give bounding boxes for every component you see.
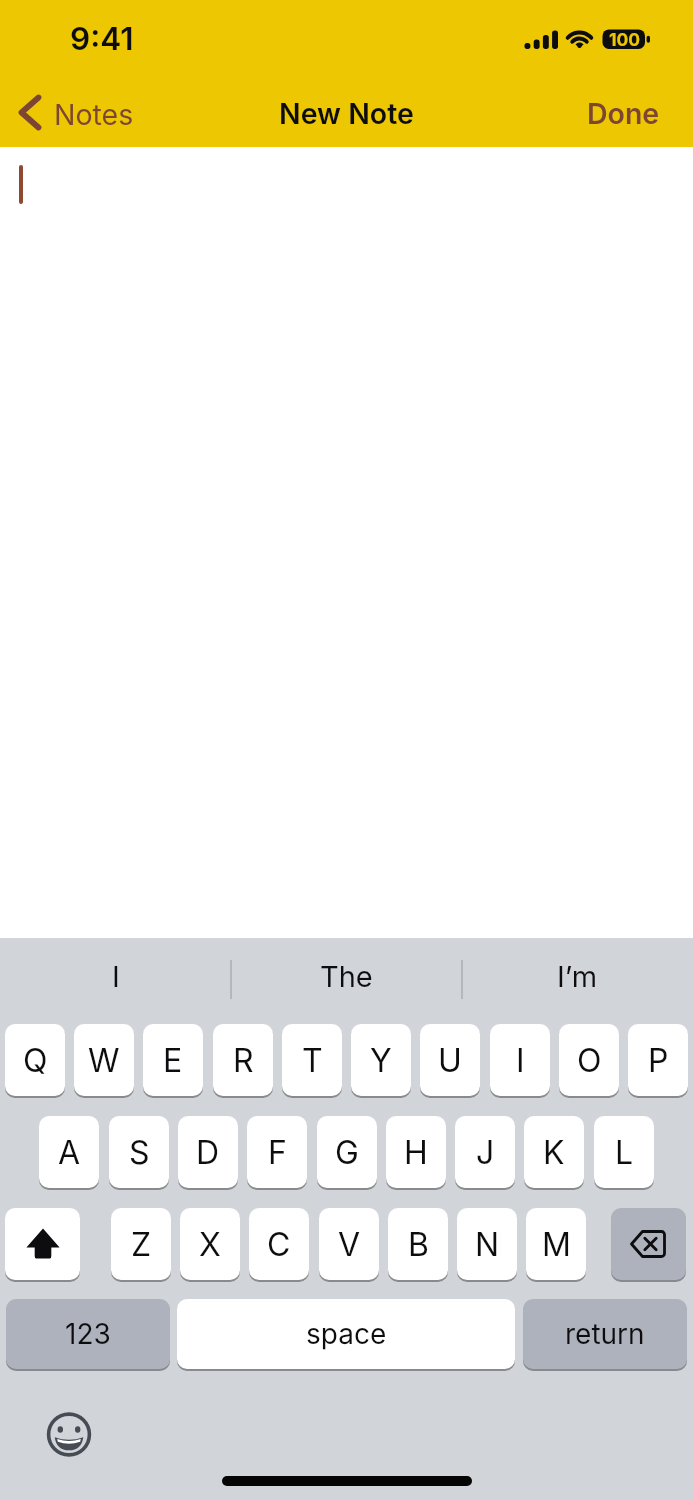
button[interactable]: J (455, 1116, 515, 1188)
button[interactable]: Done (575, 94, 660, 132)
staticText: V (338, 1225, 361, 1264)
button[interactable]: T (282, 1024, 342, 1096)
staticText: B (408, 1225, 429, 1264)
button[interactable] (5, 1208, 80, 1280)
staticText: Notes (54, 97, 134, 131)
staticText: D (196, 1133, 220, 1172)
button[interactable]: Z (111, 1208, 171, 1280)
staticText: L (615, 1133, 634, 1172)
staticText: R (233, 1041, 254, 1080)
button[interactable]: L (594, 1116, 654, 1188)
button[interactable]: K (524, 1116, 584, 1188)
staticText: F (268, 1133, 287, 1172)
button[interactable]: H (386, 1116, 446, 1188)
staticText: space (306, 1317, 387, 1351)
staticText: P (648, 1041, 669, 1080)
staticText: A (58, 1133, 81, 1172)
staticText: S (129, 1133, 150, 1172)
staticText: J (476, 1133, 495, 1172)
staticText: I (516, 1041, 525, 1080)
button[interactable]: I (0, 944, 231, 1008)
staticText: Q (23, 1041, 48, 1080)
button[interactable]: return (523, 1299, 687, 1369)
button[interactable]: E (143, 1024, 203, 1096)
staticText: O (577, 1041, 602, 1080)
button[interactable]: Notes (54, 95, 174, 133)
button[interactable]: U (420, 1024, 480, 1096)
button[interactable]: Y (351, 1024, 411, 1096)
staticText: T (302, 1041, 323, 1080)
staticText: W (88, 1041, 120, 1080)
button[interactable]: I’m (462, 944, 693, 1008)
staticText: C (267, 1225, 291, 1264)
staticText: K (543, 1133, 565, 1172)
staticText: 100 (609, 29, 641, 48)
button[interactable]: S (109, 1116, 169, 1188)
button[interactable] (17, 94, 45, 132)
button[interactable]: C (249, 1208, 309, 1280)
button[interactable]: D (178, 1116, 238, 1188)
button[interactable]: I (490, 1024, 550, 1096)
button[interactable]: X (180, 1208, 240, 1280)
button[interactable]: O (559, 1024, 619, 1096)
staticText: 9:41 (70, 19, 134, 53)
staticText: M (542, 1225, 571, 1264)
button[interactable]: W (74, 1024, 134, 1096)
staticText: New Note (279, 96, 414, 130)
staticText: I (112, 959, 120, 994)
button[interactable]: 123 (6, 1299, 170, 1369)
button[interactable]: B (388, 1208, 448, 1280)
button[interactable]: space (177, 1299, 515, 1369)
staticText: G (335, 1133, 359, 1172)
staticText: I’m (557, 959, 598, 994)
button[interactable]: The (231, 944, 462, 1008)
button[interactable]: A (39, 1116, 99, 1188)
staticText: 123 (65, 1317, 111, 1351)
button[interactable]: V (319, 1208, 379, 1280)
button[interactable]: F (247, 1116, 307, 1188)
button[interactable] (611, 1208, 686, 1280)
staticText: E (163, 1041, 183, 1080)
staticText: X (199, 1225, 221, 1264)
staticText: H (404, 1133, 428, 1172)
staticText: return (565, 1317, 645, 1351)
staticText: Done (587, 96, 660, 130)
button[interactable]: Q (5, 1024, 65, 1096)
staticText: The (320, 959, 373, 994)
staticText: Z (131, 1225, 152, 1264)
button[interactable]: M (526, 1208, 586, 1280)
button[interactable] (45, 1410, 93, 1458)
staticText: N (475, 1225, 500, 1264)
staticText: U (438, 1041, 462, 1080)
button[interactable]: G (317, 1116, 377, 1188)
button[interactable]: N (457, 1208, 517, 1280)
staticText: Y (370, 1041, 392, 1080)
button[interactable]: P (628, 1024, 688, 1096)
button[interactable]: R (213, 1024, 273, 1096)
